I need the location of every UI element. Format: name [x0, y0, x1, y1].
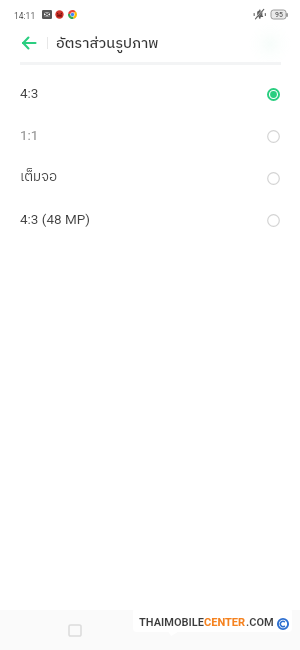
button[interactable]: Recents — [63, 618, 87, 642]
staticText: 4:3 (48 MP) — [20, 211, 90, 227]
button[interactable]: Back — [15, 31, 43, 54]
staticText: 95 — [275, 11, 283, 19]
staticText: 1:1 — [20, 127, 39, 143]
button[interactable]: เต็มจอ — [0, 156, 300, 198]
staticText: .COM — [246, 616, 274, 629]
staticText: CENTER — [204, 616, 246, 629]
button[interactable]: 4:3 (48 MP) — [0, 198, 300, 240]
button[interactable]: 4:3 — [0, 72, 300, 114]
staticText: เต็มจอ — [20, 166, 58, 188]
staticText: 4:3 — [20, 85, 39, 101]
staticText: อัตราส่วนรูปภาพ — [56, 32, 159, 56]
staticText: THAIMOBILE — [139, 616, 204, 629]
staticText: 14:11 — [14, 11, 36, 21]
button[interactable]: 1:1 — [0, 114, 300, 156]
